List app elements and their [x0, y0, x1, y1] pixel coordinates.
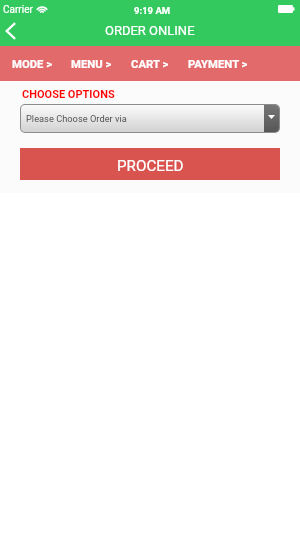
staticText: MENU >: [71, 58, 112, 71]
staticText: 9:19 AM: [134, 5, 171, 16]
button[interactable]: PROCEED: [20, 148, 280, 180]
staticText: CHOOSE OPTIONS: [22, 88, 115, 101]
button[interactable]: MENU >: [67, 47, 116, 82]
button[interactable]: PAYMENT >: [184, 47, 252, 82]
staticText: CART >: [131, 58, 169, 71]
staticText: Carrier: [3, 4, 33, 16]
staticText: PROCEED: [117, 157, 184, 175]
button[interactable]: Please Choose Order via: [21, 105, 279, 132]
staticText: ORDER ONLINE: [105, 23, 195, 38]
staticText: Please Choose Order via: [26, 113, 127, 124]
staticText: MODE >: [12, 58, 53, 71]
button[interactable]: CART >: [127, 47, 173, 82]
staticText: PAYMENT >: [188, 58, 248, 71]
button[interactable]: Back: [0, 17, 21, 45]
button[interactable]: MODE >: [8, 47, 57, 82]
